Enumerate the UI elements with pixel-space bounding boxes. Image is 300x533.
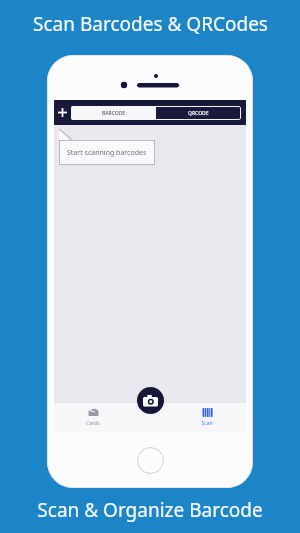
button[interactable]: QRCODE — [156, 106, 241, 120]
button[interactable]: Scan with camera — [137, 387, 164, 414]
button[interactable]: Cards — [67, 402, 119, 432]
staticText: QRCODE — [188, 110, 209, 117]
staticText: Scan & Organize Barcode — [37, 497, 263, 523]
button[interactable]: Scan — [181, 402, 233, 432]
staticText: Scan Barcodes & QRCodes — [33, 11, 268, 37]
button[interactable]: Add — [54, 100, 71, 125]
button[interactable]: Start scanning barcodes — [59, 140, 155, 165]
staticText: Start scanning barcodes — [67, 148, 147, 158]
button[interactable]: Home — [137, 447, 164, 474]
staticText: BARCODE — [102, 110, 126, 117]
staticText: Scan — [201, 420, 213, 427]
staticText: Cards — [86, 420, 100, 427]
button[interactable]: BARCODE — [71, 106, 156, 120]
